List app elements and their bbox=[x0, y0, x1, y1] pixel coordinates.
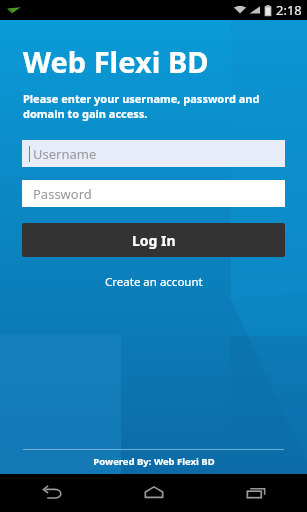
staticText: Username bbox=[33, 145, 97, 163]
staticText: 2:18 bbox=[276, 1, 302, 19]
button[interactable]: Create an account bbox=[97, 271, 211, 293]
staticText: Log In bbox=[132, 231, 176, 250]
button[interactable]: Password bbox=[22, 180, 285, 207]
button[interactable]: Username bbox=[22, 140, 285, 167]
button[interactable]: Recent apps bbox=[205, 474, 307, 512]
staticText: Create an account bbox=[105, 274, 203, 290]
staticText: Powered By: Web Flexi BD bbox=[93, 455, 215, 468]
button[interactable]: Home bbox=[103, 474, 205, 512]
staticText: Please enter your username, password and… bbox=[23, 91, 285, 121]
staticText: Password bbox=[33, 185, 92, 203]
button[interactable]: Log In bbox=[22, 223, 285, 257]
button[interactable]: Back bbox=[0, 474, 103, 512]
staticText: Web Flexi BD bbox=[23, 42, 209, 81]
